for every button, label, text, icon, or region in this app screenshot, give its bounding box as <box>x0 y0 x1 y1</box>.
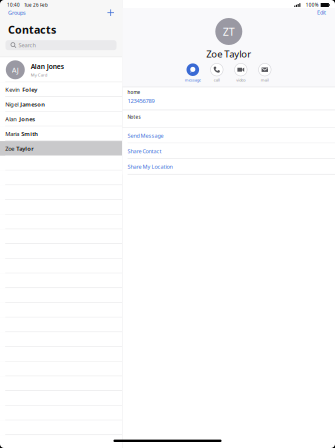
button[interactable]: Zoe <box>0 141 122 156</box>
staticText: Nigel <box>5 100 18 108</box>
staticText: ZT <box>223 24 235 39</box>
staticText: mail <box>261 77 269 83</box>
button[interactable]: video <box>229 63 253 83</box>
button[interactable]: Nigel <box>0 97 122 112</box>
button[interactable]: Alan <box>0 112 122 126</box>
button[interactable]: Kevin <box>0 82 122 97</box>
button[interactable]: Edit <box>315 9 328 16</box>
button[interactable]: Send Message <box>123 128 335 143</box>
button[interactable]: Search <box>5 40 116 50</box>
staticText: My Card <box>31 72 48 78</box>
staticText: Contacts <box>8 22 56 37</box>
staticText: Alan <box>5 115 17 123</box>
staticText: Jones <box>19 115 35 123</box>
button[interactable]: call <box>205 63 229 83</box>
button[interactable]: Share My Location <box>123 159 335 174</box>
button[interactable]: Groups <box>8 9 26 16</box>
staticText: Jameson <box>20 100 45 108</box>
staticText: Search <box>18 41 35 49</box>
staticText: 123456789 <box>128 97 155 105</box>
staticText: Smith <box>21 130 38 138</box>
staticText: AJ <box>12 65 19 75</box>
button[interactable]: Add contact <box>106 8 115 17</box>
button[interactable]: AJ <box>0 57 122 82</box>
staticText: Zoe <box>5 144 14 152</box>
staticText: Maria <box>5 130 19 138</box>
button[interactable]: Maria <box>0 126 122 141</box>
button[interactable]: mail <box>253 63 277 83</box>
staticText: Taylor <box>16 144 33 152</box>
staticText: call <box>214 77 220 83</box>
staticText: Edit <box>317 9 326 16</box>
button[interactable]: message <box>181 63 205 83</box>
staticText: Share Contact <box>128 147 162 155</box>
staticText: Kevin <box>5 86 20 93</box>
staticText: 10:40 <box>7 2 20 8</box>
staticText: video <box>236 77 245 83</box>
staticText: Groups <box>8 9 26 16</box>
staticText: Send Message <box>128 132 164 139</box>
staticText: Zoe Taylor <box>206 47 251 60</box>
staticText: Notes <box>128 114 141 120</box>
button[interactable]: Share Contact <box>123 143 335 159</box>
staticText: Tue 26 Feb <box>24 2 48 8</box>
staticText: Foley <box>22 86 37 93</box>
staticText: home <box>128 89 141 95</box>
staticText: 100% <box>306 2 319 8</box>
staticText: Alan Jones <box>31 62 64 71</box>
staticText: Share My Location <box>128 163 173 170</box>
staticText: message <box>185 77 201 83</box>
